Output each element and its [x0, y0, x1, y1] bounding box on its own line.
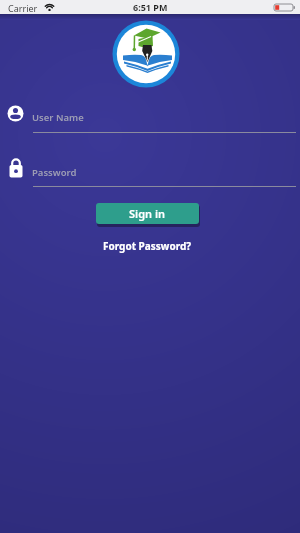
button[interactable]: Forgot Password? — [103, 239, 192, 253]
button[interactable]: User Name — [0, 103, 300, 134]
staticText: Forgot Password? — [103, 239, 192, 253]
staticText: Sign in — [129, 206, 166, 221]
staticText: Password — [32, 166, 77, 179]
button[interactable]: Password — [0, 157, 300, 188]
staticText: User Name — [32, 111, 84, 124]
staticText: 6:51 PM — [133, 1, 168, 13]
staticText: Carrier — [8, 2, 38, 14]
button[interactable]: Sign in — [96, 203, 199, 224]
